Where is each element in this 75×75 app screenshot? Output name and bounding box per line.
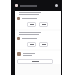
button[interactable]: Action bbox=[27, 42, 36, 47]
button[interactable]: Action bbox=[15, 31, 61, 49]
button[interactable] bbox=[17, 59, 53, 64]
button[interactable]: Profile bbox=[55, 4, 58, 7]
button[interactable]: App icon bbox=[15, 4, 18, 7]
button[interactable] bbox=[15, 51, 61, 64]
button[interactable]: Action bbox=[27, 22, 36, 27]
button[interactable]: Action bbox=[15, 11, 61, 29]
button[interactable]: Action bbox=[39, 42, 48, 47]
button[interactable]: Action bbox=[39, 22, 48, 27]
